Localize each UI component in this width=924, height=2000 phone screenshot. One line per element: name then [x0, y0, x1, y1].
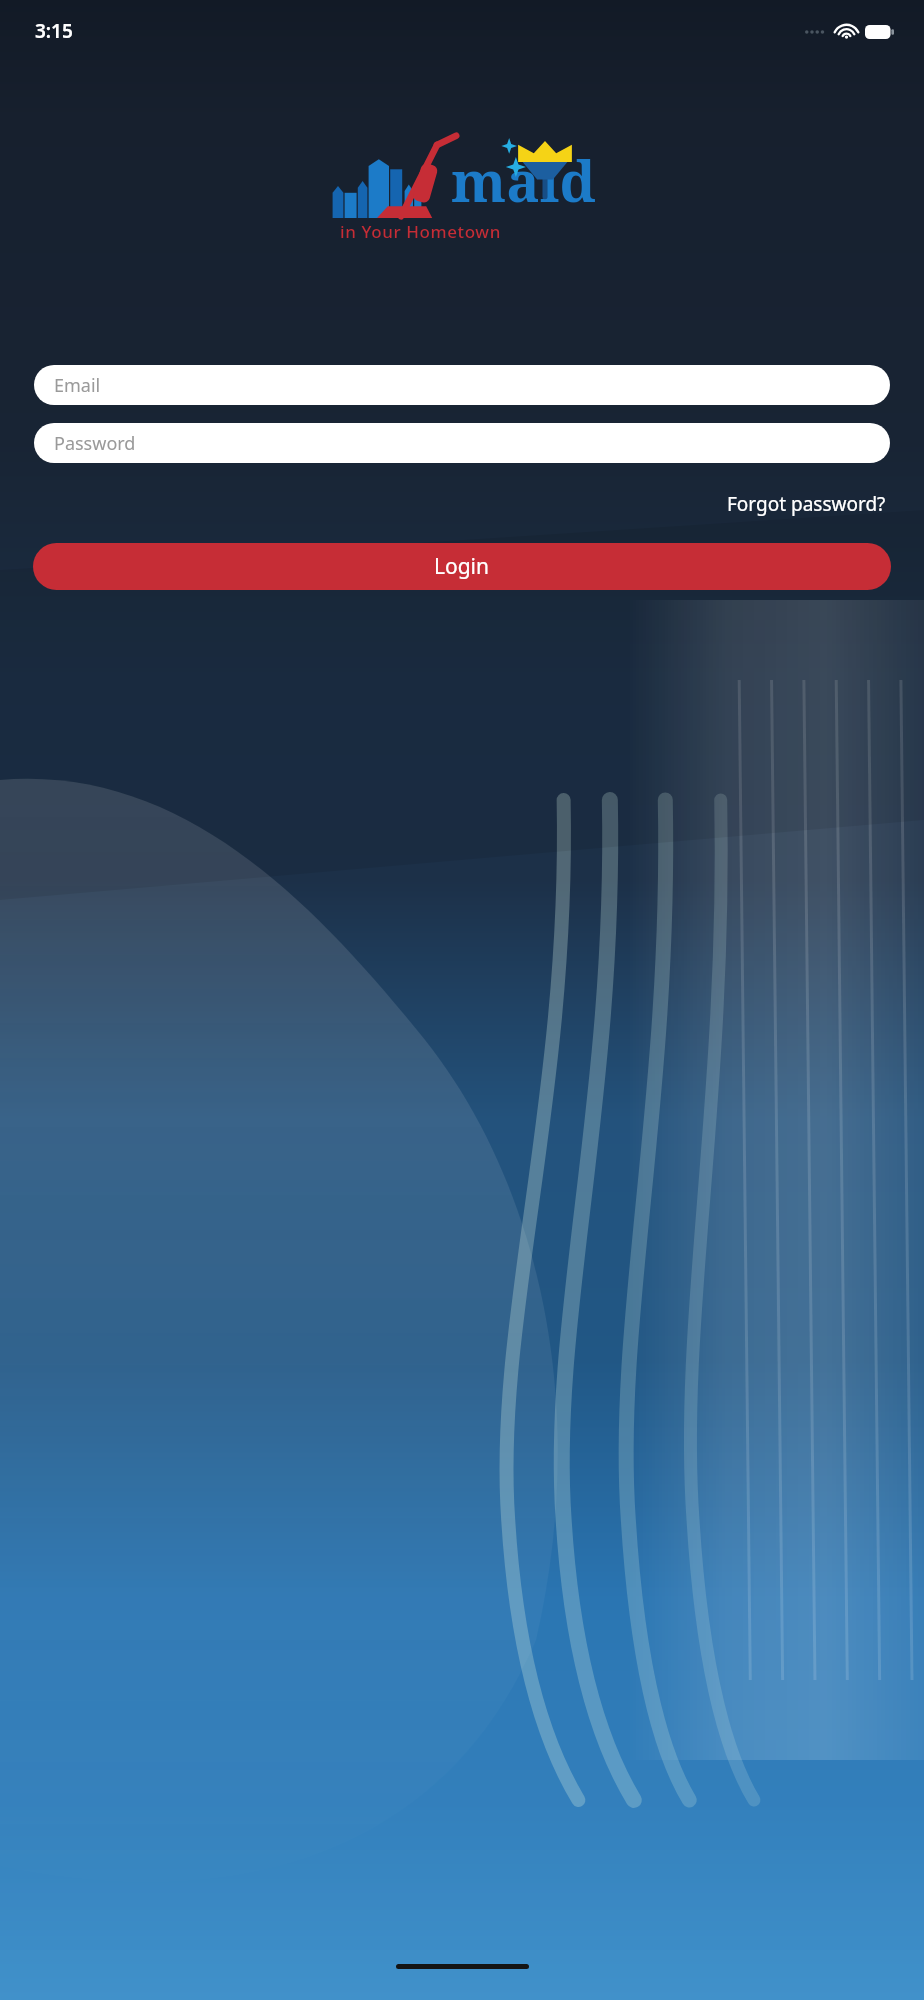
staticText: Email	[54, 373, 101, 398]
button[interactable]: Password	[34, 423, 890, 463]
button[interactable]: Forgot password?	[723, 487, 890, 521]
button[interactable]: Login	[33, 543, 891, 590]
staticText: Login	[434, 552, 490, 581]
staticText: Password	[54, 431, 136, 456]
staticText: in Your Hometown	[340, 220, 501, 243]
staticText: maid	[451, 142, 596, 218]
button[interactable]: Email	[34, 365, 890, 405]
staticText: 3:15	[35, 18, 73, 44]
staticText: Forgot password?	[727, 491, 886, 517]
